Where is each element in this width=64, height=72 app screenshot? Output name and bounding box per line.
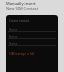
staticText: Name: [9, 42, 18, 46]
staticText: Manually insert: [6, 1, 36, 6]
staticText: New SIM Contact: [6, 6, 39, 11]
staticText: Create contact: [9, 19, 30, 23]
staticText: SIM storage is full: [9, 52, 35, 56]
staticText: Name: [9, 28, 18, 32]
staticText: Name: [9, 35, 18, 39]
